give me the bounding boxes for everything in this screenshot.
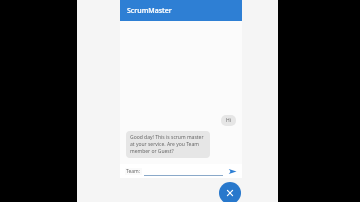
button[interactable]: Send [227, 166, 237, 176]
button[interactable]: Good day! This is scrum master at your s… [126, 131, 210, 158]
button[interactable]: ScrumMaster [120, 0, 242, 21]
button[interactable]: Team: [125, 168, 142, 175]
staticText: Good day! This is scrum master at your s… [130, 134, 206, 155]
staticText: Hi [226, 117, 231, 124]
button[interactable] [144, 167, 223, 176]
button[interactable]: Hi [221, 115, 236, 126]
button[interactable]: Close chat [219, 182, 241, 202]
staticText: Team: [126, 168, 141, 175]
staticText: ScrumMaster [127, 6, 172, 16]
